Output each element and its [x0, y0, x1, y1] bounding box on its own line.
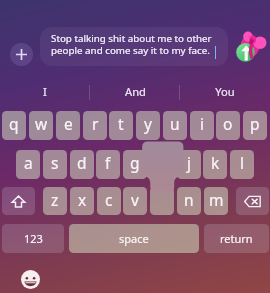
staticText: x: [78, 189, 87, 210]
button[interactable]: d: [70, 150, 94, 179]
button[interactable]: You: [180, 79, 270, 106]
staticText: g: [130, 152, 140, 173]
button[interactable]: Stop talking shit about me to other peop…: [40, 27, 228, 66]
button[interactable]: x: [70, 187, 94, 215]
button[interactable]: And: [90, 79, 180, 106]
button[interactable]: p: [243, 111, 267, 140]
staticText: t: [118, 113, 124, 134]
button[interactable]: q: [2, 111, 26, 140]
button[interactable]: m: [204, 187, 228, 215]
staticText: j: [187, 152, 191, 173]
button[interactable]: 123: [2, 224, 64, 253]
staticText: u: [170, 113, 180, 134]
staticText: You: [215, 84, 235, 99]
button[interactable]: Shift: [2, 187, 35, 215]
staticText: d: [77, 152, 87, 173]
staticText: c: [105, 189, 113, 210]
button[interactable]: e: [56, 111, 80, 140]
staticText: z: [51, 189, 59, 210]
staticText: f: [105, 152, 111, 173]
button[interactable]: Delete: [236, 187, 269, 215]
staticText: k: [211, 152, 220, 173]
staticText: a: [24, 152, 33, 173]
button[interactable]: Send: [232, 28, 270, 66]
button[interactable]: I: [0, 79, 90, 106]
button[interactable]: n: [177, 187, 201, 215]
staticText: e: [64, 113, 73, 134]
button[interactable]: space: [69, 224, 199, 253]
staticText: l: [240, 152, 244, 173]
button[interactable]: Add attachment: [10, 43, 33, 66]
button[interactable]: f: [96, 150, 120, 179]
button[interactable]: u: [163, 111, 187, 140]
button[interactable]: t: [109, 111, 133, 140]
button[interactable]: l: [230, 150, 254, 179]
button[interactable]: return: [204, 224, 269, 253]
button[interactable]: w: [29, 111, 53, 140]
button[interactable]: z: [43, 187, 67, 215]
button[interactable]: [150, 187, 174, 215]
staticText: And: [125, 84, 146, 99]
staticText: s: [51, 152, 59, 173]
staticText: n: [184, 189, 194, 210]
staticText: q: [9, 113, 19, 134]
button[interactable]: r: [83, 111, 107, 140]
staticText: v: [131, 189, 139, 210]
staticText: p: [250, 113, 260, 134]
staticText: 123: [24, 231, 43, 246]
button[interactable]: g: [123, 150, 147, 179]
staticText: r: [92, 113, 99, 134]
button[interactable]: Emoji keyboard: [14, 263, 46, 293]
button[interactable]: k: [203, 150, 227, 179]
staticText: i: [200, 113, 204, 134]
button[interactable]: c: [97, 187, 121, 215]
staticText: space: [119, 231, 149, 246]
staticText: I: [43, 84, 47, 99]
button[interactable]: a: [16, 150, 40, 179]
button[interactable]: v: [123, 187, 147, 215]
staticText: m: [209, 189, 224, 210]
staticText: w: [35, 113, 48, 134]
staticText: return: [220, 231, 253, 246]
staticText: y: [144, 113, 152, 134]
staticText: Stop talking shit about me to other peop…: [51, 32, 212, 57]
button[interactable]: y: [136, 111, 160, 140]
staticText: o: [223, 113, 233, 134]
button[interactable]: i: [190, 111, 214, 140]
button[interactable]: j: [177, 150, 201, 179]
button[interactable]: s: [43, 150, 67, 179]
button[interactable]: o: [216, 111, 240, 140]
